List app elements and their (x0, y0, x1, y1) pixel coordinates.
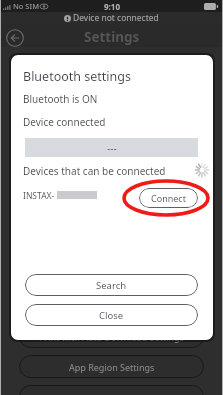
staticText: Close (99, 309, 124, 322)
staticText: Bluetooth settings (23, 68, 131, 85)
staticText: Device connected (23, 115, 106, 129)
staticText: App Region Settings (69, 361, 155, 373)
button[interactable]: Print with Auto Download Settings (19, 325, 204, 348)
staticText: 9:10 (104, 1, 120, 12)
staticText: Settings (84, 28, 140, 46)
button[interactable]: Connect (139, 188, 198, 208)
staticText: Bluetooth is ON (23, 92, 98, 106)
staticText: --- (107, 141, 117, 155)
button[interactable]: Search (25, 274, 198, 296)
button[interactable]: App Region Settings (19, 355, 204, 378)
button[interactable]: Back (5, 28, 24, 47)
staticText: Search (96, 279, 127, 292)
button[interactable] (19, 385, 204, 395)
staticText: Devices that can be connected (23, 164, 166, 178)
staticText: Device not connected (73, 12, 159, 24)
staticText: INSTAX- (23, 190, 55, 202)
staticText: Connect (151, 192, 186, 204)
staticText: No SIM (13, 1, 40, 11)
button[interactable]: Close (25, 304, 198, 326)
staticText: Print with Auto Download Settings (39, 331, 184, 343)
